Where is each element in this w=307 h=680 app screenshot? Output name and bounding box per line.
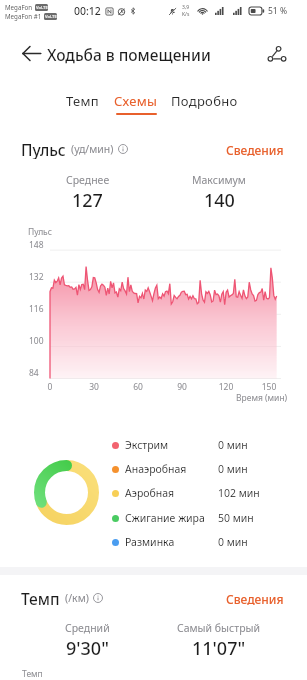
button[interactable]: Экстрим: [0, 436, 307, 454]
staticText: (уд/мин): [71, 142, 114, 156]
button[interactable]: Back: [17, 39, 46, 68]
button[interactable]: Темп: [62, 90, 103, 112]
staticText: (/км): [65, 591, 89, 605]
staticText: 127: [72, 188, 103, 213]
staticText: 9'30": [66, 636, 109, 661]
staticText: 116: [29, 303, 44, 315]
button[interactable]: Подробно: [167, 90, 242, 112]
staticText: 60: [128, 381, 148, 393]
staticText: Аэробная: [125, 486, 175, 500]
button[interactable]: Сведения: [222, 139, 288, 159]
staticText: 51 %: [268, 5, 287, 17]
staticText: Сжигание жира: [125, 511, 205, 525]
staticText: Средний: [65, 621, 110, 635]
button[interactable]: Share: [262, 39, 291, 68]
staticText: K/s: [182, 11, 190, 18]
staticText: 30: [84, 381, 104, 393]
staticText: MegaFon #1: [5, 12, 42, 20]
staticText: 120: [216, 381, 236, 393]
staticText: 140: [204, 188, 235, 213]
staticText: VoLTE: [36, 5, 48, 11]
staticText: 11'07": [192, 636, 246, 661]
staticText: Темп: [21, 588, 60, 608]
button[interactable]: Сжигание жира: [0, 509, 307, 527]
staticText: Максимум: [192, 173, 246, 187]
staticText: Разминка: [125, 535, 175, 549]
staticText: Сведения: [226, 142, 284, 156]
staticText: 0 мин: [218, 535, 248, 549]
staticText: VoLTE: [45, 14, 57, 20]
staticText: 84: [29, 367, 39, 379]
staticText: Время (мин): [236, 392, 288, 404]
staticText: Среднее: [66, 173, 110, 187]
staticText: Подробно: [171, 92, 238, 110]
button[interactable]: Анаэробная: [0, 460, 307, 478]
button[interactable]: Схемы: [110, 90, 162, 117]
staticText: 0 мин: [218, 438, 248, 452]
staticText: 100: [29, 335, 44, 347]
staticText: 0 мин: [218, 462, 248, 476]
staticText: 50 мин: [218, 511, 254, 525]
staticText: 132: [29, 271, 44, 283]
staticText: MegaFon: [5, 3, 33, 11]
staticText: Темп: [22, 668, 43, 680]
staticText: Пульс: [21, 139, 66, 159]
staticText: Самый быстрый: [177, 621, 261, 635]
staticText: 3,9: [182, 4, 190, 11]
staticText: Темп: [66, 92, 99, 110]
staticText: Ходьба в помещении: [47, 44, 211, 65]
staticText: 00:12: [74, 4, 101, 18]
button[interactable]: Аэробная: [0, 484, 307, 502]
staticText: Пульс: [28, 226, 52, 238]
staticText: Анаэробная: [125, 462, 187, 476]
staticText: 148: [29, 239, 44, 251]
staticText: 150: [259, 381, 279, 393]
staticText: 90: [172, 381, 192, 393]
button[interactable]: Разминка: [0, 533, 307, 551]
staticText: Схемы: [114, 92, 158, 110]
staticText: Экстрим: [125, 438, 169, 452]
staticText: 102 мин: [218, 486, 260, 500]
staticText: 0: [40, 381, 60, 393]
staticText: Сведения: [226, 591, 284, 605]
button[interactable]: Сведения: [222, 588, 288, 608]
